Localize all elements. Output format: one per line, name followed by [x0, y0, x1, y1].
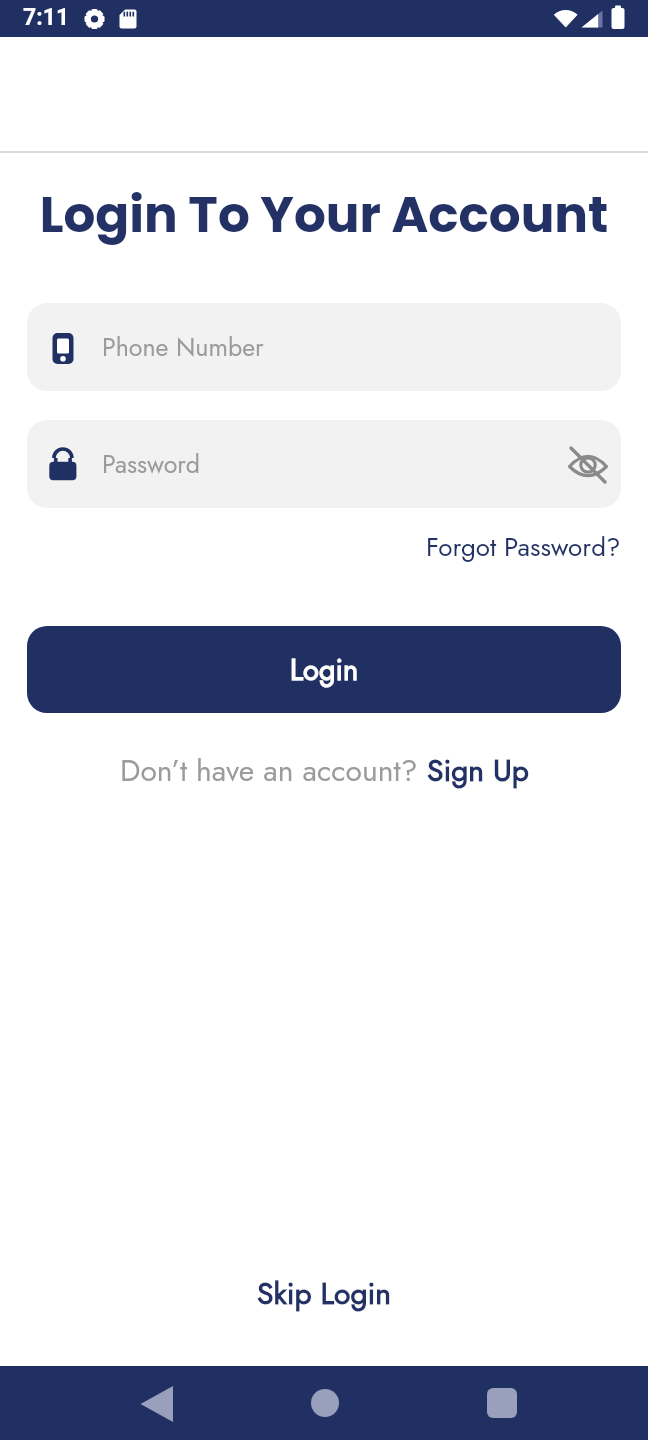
- staticText: Login: [290, 649, 359, 691]
- button[interactable]: [295, 1373, 355, 1433]
- staticText: Don’t have an account?: [120, 749, 427, 792]
- button[interactable]: Password: [27, 420, 621, 508]
- staticText: Password: [102, 446, 201, 482]
- staticText: Phone Number: [102, 329, 264, 365]
- button[interactable]: Login: [27, 626, 621, 713]
- staticText: 7:11: [23, 4, 70, 31]
- button[interactable]: Forgot Password?: [426, 528, 621, 566]
- staticText: Login To Your Account: [0, 180, 648, 250]
- button[interactable]: Sign Up: [427, 749, 529, 792]
- button[interactable]: [128, 1373, 188, 1433]
- button[interactable]: Skip Login: [257, 1272, 392, 1315]
- button[interactable]: [472, 1373, 532, 1433]
- button[interactable]: Phone Number: [27, 303, 621, 391]
